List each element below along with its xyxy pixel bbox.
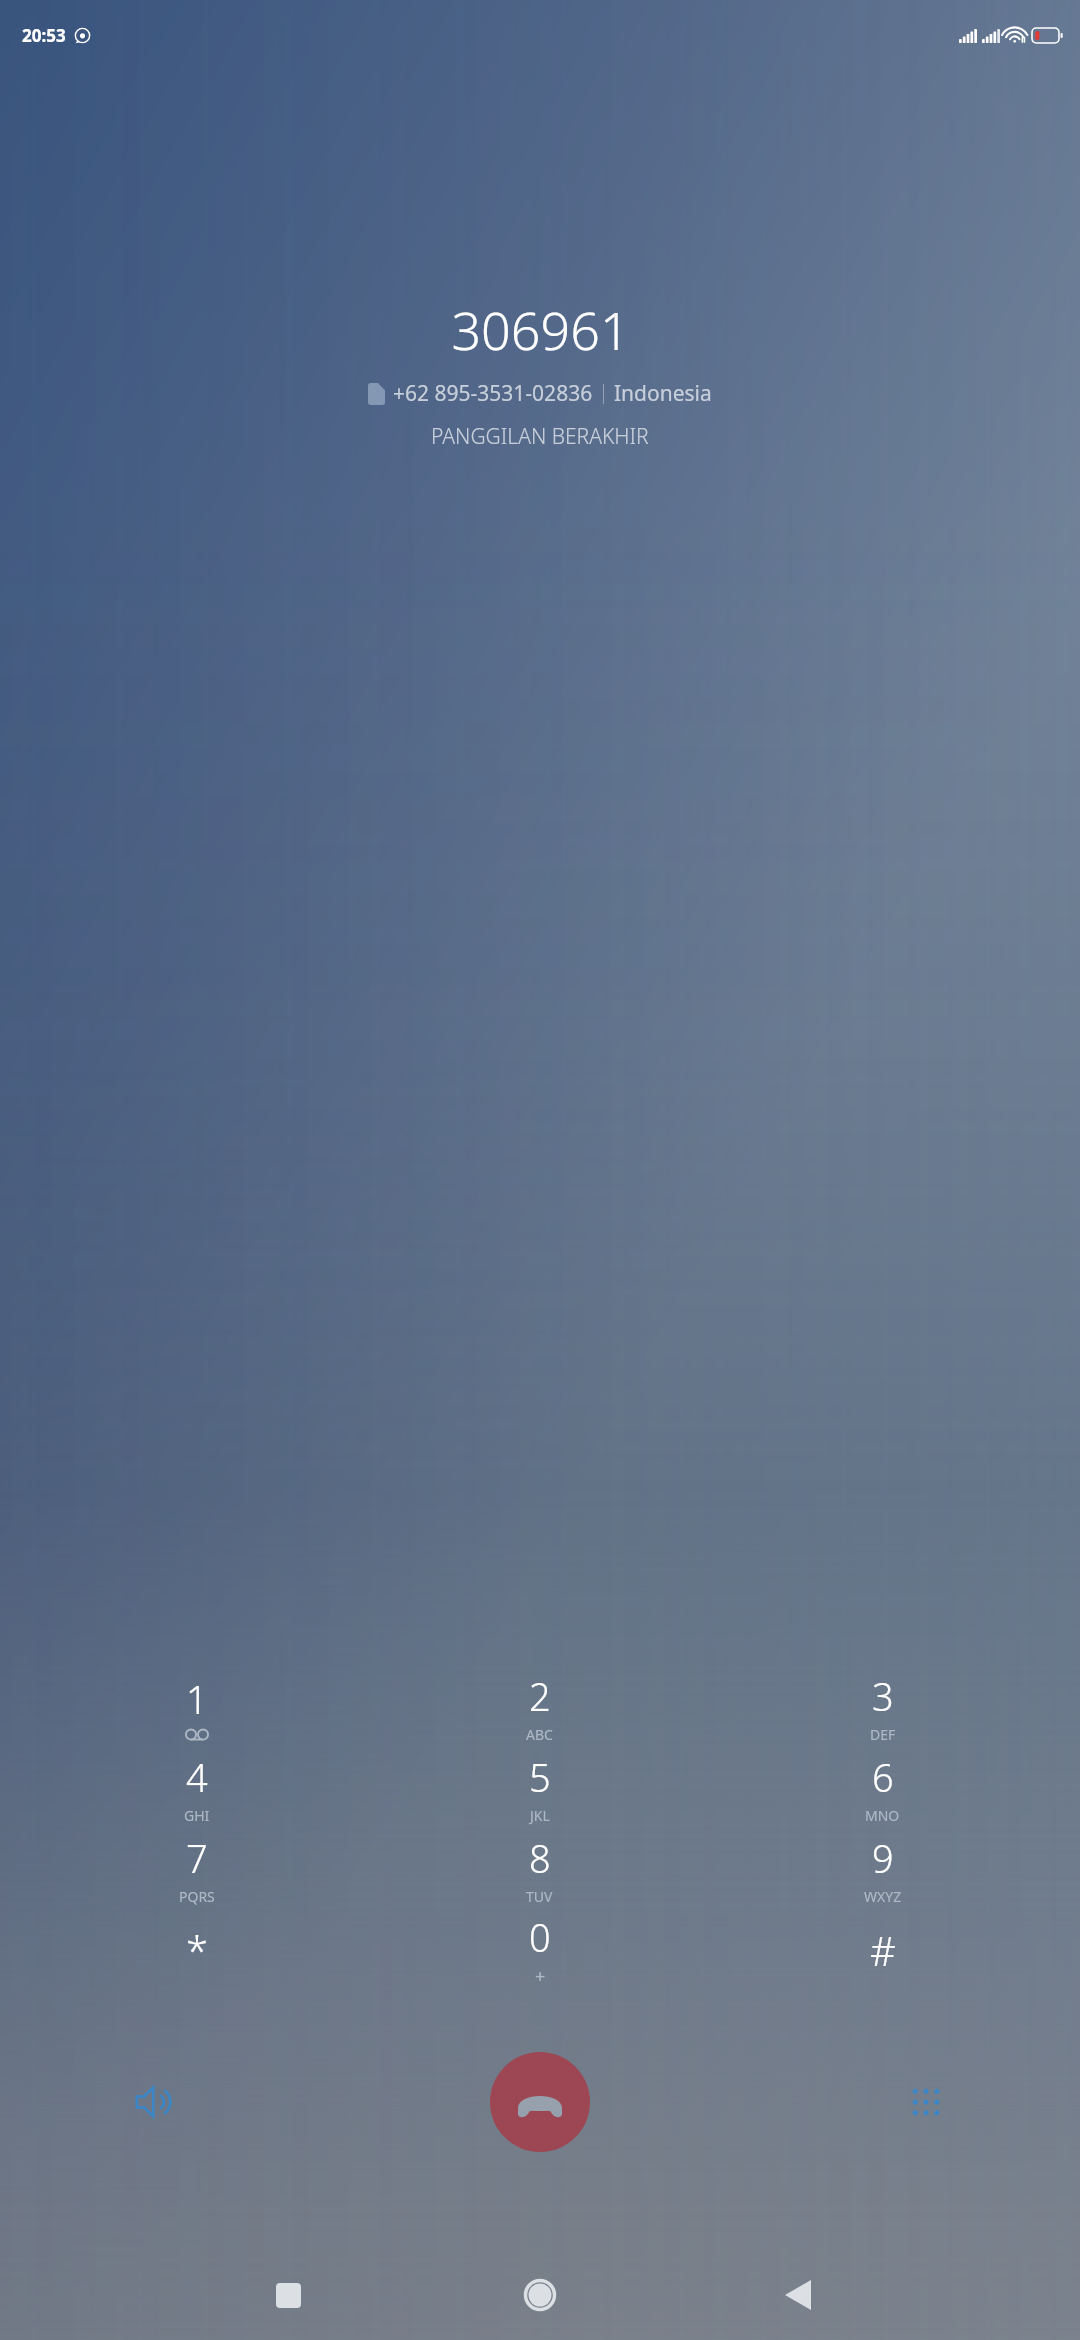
button[interactable]: # (711, 1909, 1054, 1990)
button[interactable]: 3 (711, 1666, 1054, 1747)
button[interactable]: 2 (368, 1666, 711, 1747)
button[interactable]: 9 (711, 1828, 1054, 1909)
button[interactable]: 1 (26, 1666, 368, 1747)
staticText: PQRS (179, 1887, 215, 1906)
button[interactable]: 0 (368, 1909, 711, 1990)
staticText: 2 (529, 1670, 551, 1722)
button[interactable]: * (26, 1909, 368, 1990)
staticText: 5 (529, 1751, 551, 1803)
staticText: 8 (529, 1832, 551, 1884)
staticText: Indonesia (614, 379, 712, 408)
staticText: * (186, 1923, 209, 1977)
button[interactable]: Speaker (118, 2066, 190, 2138)
button[interactable]: Home (510, 2265, 570, 2325)
staticText: 20:53 (22, 24, 66, 47)
staticText: TUV (526, 1887, 553, 1906)
button[interactable]: 6 (711, 1747, 1054, 1828)
button[interactable]: Keypad (890, 2066, 962, 2138)
staticText: 3 (872, 1670, 894, 1722)
staticText: 306961 (451, 294, 630, 365)
staticText: ABC (526, 1725, 553, 1744)
staticText: JKL (530, 1806, 550, 1825)
button[interactable]: 8 (368, 1828, 711, 1909)
staticText: 9 (872, 1832, 894, 1884)
staticText: + (535, 1964, 546, 1989)
staticText: MNO (865, 1806, 900, 1825)
staticText: 4 (186, 1751, 208, 1803)
button[interactable]: 4 (26, 1747, 368, 1828)
button[interactable]: 7 (26, 1828, 368, 1909)
staticText: PANGGILAN BERAKHIR (431, 422, 649, 451)
staticText: +62 895-3531-02836 (393, 379, 593, 408)
staticText: 7 (186, 1832, 208, 1884)
staticText: 1 (186, 1673, 208, 1725)
staticText: # (870, 1923, 896, 1977)
staticText: GHI (184, 1806, 210, 1825)
staticText: 0 (529, 1911, 551, 1963)
button[interactable]: Recents (258, 2265, 318, 2325)
button[interactable]: Back (768, 2265, 828, 2325)
button[interactable]: 5 (368, 1747, 711, 1828)
button[interactable]: End call (490, 2052, 590, 2152)
staticText: DEF (870, 1725, 896, 1744)
staticText: 6 (872, 1751, 894, 1803)
staticText: WXYZ (864, 1887, 902, 1906)
